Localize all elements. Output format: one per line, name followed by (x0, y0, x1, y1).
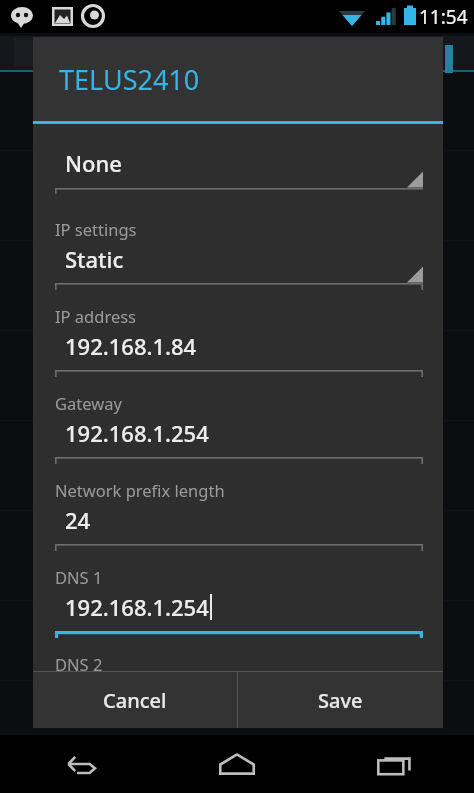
button[interactable]: IP settings (33, 211, 443, 298)
staticText: 192.168.1.254 (65, 418, 209, 448)
staticText: 11:54 (419, 4, 468, 30)
button[interactable]: Network prefix length (33, 472, 443, 559)
button[interactable]: None (33, 131, 443, 211)
staticText: DNS 1 (55, 566, 103, 588)
button[interactable]: Home (158, 735, 316, 793)
staticText: DNS 2 (55, 653, 103, 671)
staticText: 192.168.1.254 (65, 592, 209, 622)
staticText: 192.168.1.84 (65, 331, 197, 361)
staticText: Gateway (55, 392, 122, 414)
button[interactable]: Back (0, 735, 158, 793)
staticText: 24 (65, 505, 91, 535)
button[interactable]: Cancel (33, 672, 237, 728)
staticText: IP settings (55, 218, 137, 240)
button[interactable]: IP address (33, 298, 443, 385)
staticText: Static (65, 244, 124, 274)
staticText: TELUS2410 (59, 61, 200, 98)
staticText: Save (318, 687, 363, 714)
staticText: Network prefix length (55, 479, 225, 501)
button[interactable]: Recent apps (316, 735, 474, 793)
button[interactable]: DNS 1 (33, 559, 443, 646)
staticText: IP address (55, 305, 137, 327)
button[interactable]: Save (238, 672, 443, 728)
button[interactable]: DNS 2 (33, 646, 443, 671)
staticText: None (65, 148, 122, 178)
button[interactable]: Gateway (33, 385, 443, 472)
staticText: Cancel (103, 687, 167, 714)
